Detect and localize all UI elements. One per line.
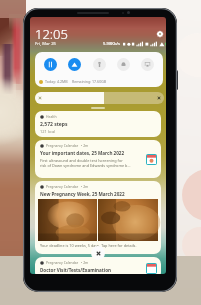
staticText: • 2m: [81, 184, 89, 189]
staticText: 121 kcal: [40, 129, 56, 134]
button[interactable]: Brightness: [35, 92, 164, 104]
staticText: Your important dates, 25 March 2022: [40, 150, 125, 156]
button[interactable]: Quick setting: [141, 58, 154, 71]
button[interactable]: Pregnancy Calendar: [35, 181, 161, 254]
staticText: • 2m: [81, 143, 89, 148]
staticText: 12:05: [35, 25, 68, 43]
staticText: Pregnancy Calendar: [46, 143, 79, 148]
staticText: Doctor Visit/Tests/Examination: [40, 267, 112, 273]
button[interactable]: Quick setting: [93, 58, 106, 71]
staticText: First ultrasound and double test (screen…: [40, 158, 131, 168]
staticText: Pregnancy Calendar: [46, 260, 79, 265]
button[interactable]: Health: [35, 111, 161, 137]
staticText: Pregnancy Calendar: [46, 184, 79, 189]
staticText: Your deadline is 10 weeks, 5 days. Tap h…: [40, 243, 137, 248]
staticText: 5.98Kb/s: [103, 41, 121, 47]
staticText: • 2m: [81, 260, 89, 265]
button[interactable]: Quick setting: [68, 58, 81, 71]
button[interactable]: Quick setting: [117, 58, 130, 71]
button[interactable]: Settings: [157, 31, 163, 37]
staticText: New Pregnancy Week, 25 March 2022: [40, 191, 125, 197]
button[interactable]: Dismiss all notifications: [91, 246, 105, 260]
staticText: Remaining: 17.60GB: [72, 79, 107, 84]
staticText: Health: [46, 114, 57, 119]
button[interactable]: Pregnancy Calendar: [35, 140, 161, 178]
button[interactable]: Pregnancy Calendar: [35, 257, 161, 274]
staticText: Today: 4.2MB: [45, 79, 68, 84]
staticText: 2,572 steps: [40, 121, 68, 128]
button[interactable]: Quick setting: [44, 58, 57, 71]
staticText: Fri, Mar 25: [35, 41, 56, 47]
